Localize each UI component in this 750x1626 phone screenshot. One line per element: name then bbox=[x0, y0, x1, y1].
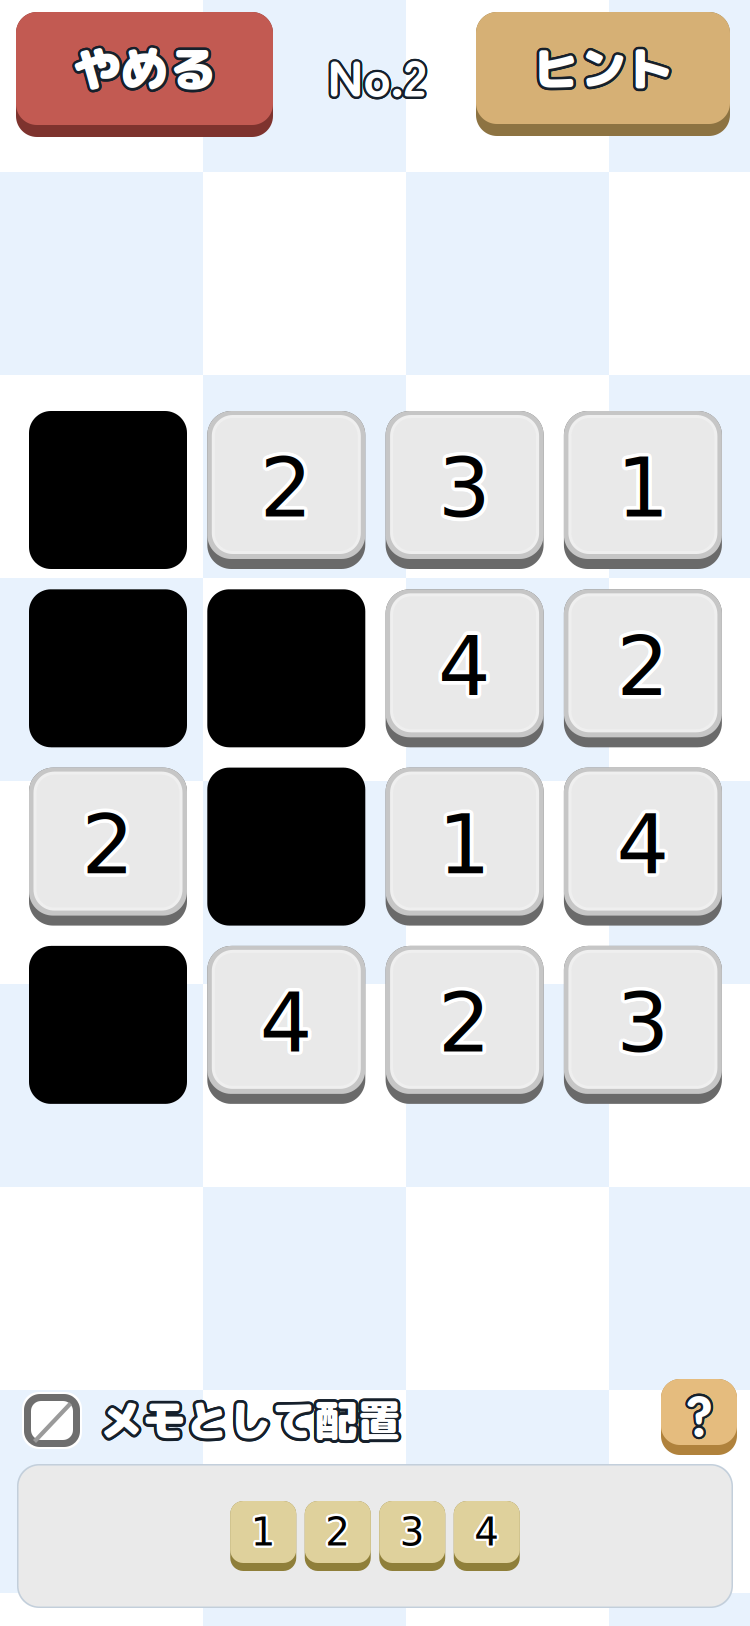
staticText: ヒント bbox=[530, 35, 671, 100]
staticText: 2 bbox=[81, 793, 134, 889]
staticText: 1 bbox=[252, 1511, 277, 1556]
staticText: ヒント bbox=[530, 34, 671, 100]
staticText: 1 bbox=[619, 437, 672, 533]
staticText: No.2 bbox=[330, 38, 429, 111]
staticText: 1 bbox=[439, 793, 492, 889]
staticText: No.2 bbox=[325, 39, 424, 112]
staticText: メモとして配置 bbox=[101, 1393, 402, 1452]
staticText: 1 bbox=[252, 1508, 277, 1553]
staticText: 4 bbox=[441, 617, 494, 713]
staticText: 4 bbox=[438, 622, 491, 718]
button[interactable] bbox=[29, 411, 187, 569]
button[interactable]: Help bbox=[661, 1379, 737, 1455]
staticText: 2 bbox=[615, 621, 668, 718]
staticText: 1 bbox=[441, 799, 494, 895]
staticText: 4 bbox=[620, 795, 673, 891]
button[interactable]: 1 bbox=[386, 768, 544, 926]
staticText: 2 bbox=[257, 437, 310, 533]
staticText: メモとして配置 bbox=[97, 1390, 398, 1450]
staticText: 2 bbox=[79, 799, 132, 895]
button[interactable]: 2 bbox=[386, 946, 544, 1104]
staticText: 2 bbox=[323, 1509, 348, 1554]
staticText: メモとして配置 bbox=[101, 1388, 402, 1447]
button[interactable] bbox=[207, 768, 365, 926]
button[interactable]: 4 bbox=[386, 589, 544, 747]
button[interactable]: 2 bbox=[305, 1501, 371, 1571]
staticText: 2 bbox=[434, 975, 487, 1071]
staticText: 4 bbox=[616, 793, 669, 889]
staticText: 2 bbox=[78, 796, 131, 893]
staticText: 3 bbox=[620, 975, 673, 1071]
staticText: 2 bbox=[262, 442, 315, 539]
staticText: 2 bbox=[326, 1507, 351, 1552]
staticText: ? bbox=[687, 1373, 715, 1454]
staticText: 3 bbox=[438, 440, 491, 536]
staticText: 3 bbox=[400, 1512, 425, 1557]
staticText: 3 bbox=[401, 1508, 426, 1553]
staticText: ? bbox=[683, 1372, 711, 1453]
button[interactable]: 4 bbox=[454, 1501, 520, 1571]
button[interactable]: 4 bbox=[564, 768, 722, 926]
staticText: ? bbox=[685, 1374, 713, 1455]
staticText: ヒント bbox=[532, 35, 673, 100]
button[interactable]: 2 bbox=[207, 411, 365, 569]
button[interactable]: 3 bbox=[564, 946, 722, 1104]
staticText: 1 bbox=[252, 1507, 277, 1552]
staticText: 3 bbox=[398, 1509, 423, 1554]
staticText: 2 bbox=[324, 1508, 349, 1553]
staticText: 3 bbox=[619, 972, 672, 1068]
staticText: 3 bbox=[442, 440, 495, 536]
button[interactable] bbox=[207, 589, 365, 747]
staticText: 2 bbox=[439, 978, 492, 1074]
staticText: 4 bbox=[472, 1509, 497, 1554]
staticText: 2 bbox=[618, 615, 671, 711]
staticText: 1 bbox=[441, 794, 494, 890]
staticText: メモとして配置 bbox=[103, 1389, 404, 1449]
staticText: 4 bbox=[474, 1509, 499, 1554]
staticText: ? bbox=[687, 1372, 715, 1453]
staticText: 1 bbox=[441, 798, 494, 894]
staticText: 4 bbox=[614, 794, 667, 890]
staticText: 4 bbox=[619, 794, 672, 890]
button[interactable] bbox=[29, 946, 187, 1104]
staticText: メモとして配置 bbox=[100, 1390, 401, 1450]
button[interactable]: 4 bbox=[207, 946, 365, 1104]
staticText: 3 bbox=[438, 443, 491, 540]
staticText: 2 bbox=[81, 800, 134, 896]
button[interactable] bbox=[29, 589, 187, 747]
staticText: 1 bbox=[614, 442, 667, 539]
staticText: 2 bbox=[439, 971, 492, 1068]
staticText: 1 bbox=[616, 436, 669, 532]
staticText: 2 bbox=[620, 620, 673, 716]
button[interactable]: 3 bbox=[386, 411, 544, 569]
staticText: 3 bbox=[435, 442, 488, 539]
staticText: 4 bbox=[439, 615, 492, 711]
button[interactable]: 2 bbox=[29, 768, 187, 926]
button[interactable]: 1 bbox=[564, 411, 722, 569]
staticText: No.2 bbox=[325, 38, 424, 111]
staticText: 4 bbox=[260, 978, 313, 1075]
staticText: 1 bbox=[618, 437, 671, 533]
staticText: 4 bbox=[437, 615, 490, 711]
staticText: 3 bbox=[441, 442, 494, 539]
staticText: 1 bbox=[441, 795, 494, 891]
staticText: 3 bbox=[615, 978, 668, 1074]
staticText: 4 bbox=[472, 1510, 497, 1555]
button[interactable]: 2 bbox=[564, 589, 722, 747]
staticText: No.2 bbox=[326, 39, 425, 113]
button[interactable]: 1 bbox=[230, 1501, 296, 1571]
staticText: 2 bbox=[260, 436, 313, 532]
button[interactable]: Place as memo bbox=[22, 1392, 82, 1449]
staticText: No.2 bbox=[327, 40, 426, 113]
staticText: 2 bbox=[260, 440, 313, 536]
button[interactable]: ヒント bbox=[476, 12, 730, 136]
staticText: 3 bbox=[618, 971, 671, 1068]
button[interactable]: やめる bbox=[16, 12, 273, 137]
staticText: メモとして配置 bbox=[99, 1388, 400, 1447]
staticText: やめる bbox=[74, 37, 218, 104]
staticText: 4 bbox=[441, 616, 494, 712]
staticText: 4 bbox=[441, 620, 494, 716]
button[interactable]: 3 bbox=[379, 1501, 445, 1571]
staticText: 2 bbox=[263, 440, 316, 536]
staticText: やめる bbox=[72, 32, 216, 99]
